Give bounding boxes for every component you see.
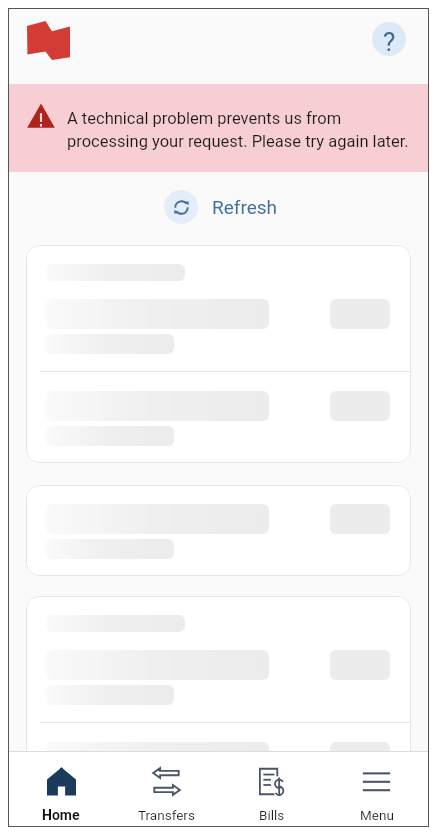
- button[interactable]: Home: [8, 752, 114, 827]
- staticText: Home: [42, 807, 80, 823]
- staticText: ?: [383, 27, 396, 56]
- button[interactable]: Help: [372, 22, 406, 56]
- button[interactable]: Transfers: [114, 752, 219, 827]
- button[interactable]: Refresh: [164, 190, 277, 224]
- button[interactable]: Bills: [219, 752, 324, 827]
- button[interactable]: Menu: [324, 752, 429, 827]
- staticText: Transfers: [138, 807, 195, 823]
- staticText: Bills: [259, 807, 285, 823]
- staticText: Refresh: [212, 196, 277, 218]
- staticText: A technical problem prevents us from: [67, 109, 342, 128]
- staticText: Menu: [360, 807, 394, 823]
- staticText: processing your request. Please try agai…: [67, 132, 409, 151]
